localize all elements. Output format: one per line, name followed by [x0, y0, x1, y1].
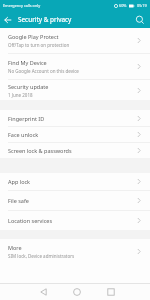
- button[interactable]: Face unlock: [0, 127, 150, 142]
- button[interactable]: Security update: [0, 80, 150, 100]
- staticText: Security update: [8, 83, 49, 90]
- button[interactable]: [0, 11, 16, 28]
- button[interactable]: [69, 284, 85, 300]
- button[interactable]: File safe: [0, 191, 150, 210]
- button[interactable]: Find My Device: [0, 54, 150, 79]
- button[interactable]: Google Play Protect: [0, 28, 150, 53]
- staticText: File safe: [8, 197, 137, 204]
- staticText: SIM lock, Device administrators: [8, 253, 75, 259]
- button[interactable]: [103, 284, 119, 300]
- staticText: More: [8, 244, 22, 251]
- staticText: Find My Device: [8, 59, 47, 66]
- staticText: Fingerprint ID: [8, 115, 137, 122]
- button[interactable]: More: [0, 239, 150, 264]
- staticText: Emergency calls only: [3, 3, 41, 8]
- button[interactable]: Location services: [0, 211, 150, 230]
- button[interactable]: Fingerprint ID: [0, 110, 150, 126]
- staticText: Face unlock: [8, 131, 137, 138]
- button[interactable]: [35, 284, 51, 300]
- button[interactable]: App lock: [0, 173, 150, 190]
- button[interactable]: [132, 11, 148, 28]
- staticText: App lock: [8, 178, 137, 185]
- staticText: 05:19: [137, 3, 147, 8]
- staticText: Location services: [8, 217, 137, 224]
- staticText: 1 June 2018: [8, 92, 33, 98]
- staticText: Google Play Protect: [8, 33, 59, 40]
- staticText: No Google Account on this device: [8, 68, 79, 74]
- staticText: Screen lock & passwords: [8, 147, 137, 154]
- staticText: 60%: [119, 3, 127, 8]
- button[interactable]: Screen lock & passwords: [0, 143, 150, 158]
- staticText: Security & privacy: [18, 15, 72, 24]
- staticText: Off/Tap to turn on protection: [8, 42, 70, 48]
